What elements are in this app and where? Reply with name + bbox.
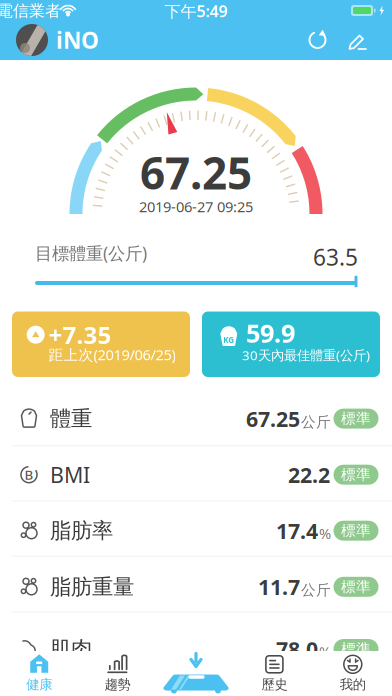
staticText: 健康 [26,676,52,693]
staticText: 11.7 [258,573,300,601]
staticText: 體重 [50,405,92,432]
staticText: 標準 [341,578,371,596]
staticText: 歷史 [261,676,287,693]
staticText: 67.25 [140,143,252,202]
staticText: KG [223,335,234,345]
button[interactable]: 肌肉 [0,0,392,56]
staticText: 22.2 [288,460,330,489]
staticText: 我的 [340,676,366,693]
button[interactable]: Measure [157,651,235,696]
staticText: 30天內最佳體重(公斤) [242,346,370,364]
button[interactable]: 健康 [0,651,78,696]
button[interactable]: B [0,0,392,56]
staticText: 78.0 [276,635,318,663]
button[interactable]: Sync [300,23,334,57]
button[interactable]: 脂肪重量 [0,0,392,56]
staticText: 2019-06-27 09:25 [139,197,253,216]
button[interactable]: Profile [16,24,48,56]
button[interactable]: 我的 [314,651,392,696]
staticText: 下午5:49 [164,0,227,22]
staticText: 脂肪重量 [50,574,134,600]
staticText: 目標體重(公斤) [35,241,147,264]
staticText: 公斤 [301,581,331,599]
button[interactable]: 體重 [0,0,392,56]
staticText: 標準 [341,522,371,540]
staticText: 肌肉 [50,636,92,662]
staticText: 公斤 [301,413,331,431]
staticText: 67.25 [246,404,300,433]
button[interactable]: 歷史 [235,651,314,696]
staticText: 距上次(2019/06/25) [48,345,175,364]
staticText: 63.5 [313,242,358,272]
button[interactable]: 脂肪率 [0,0,392,56]
staticText: % [319,523,331,543]
staticText: 標準 [341,640,371,658]
staticText: 59.9 [246,316,295,350]
button[interactable]: Edit [340,23,374,57]
staticText: 趨勢 [105,676,131,693]
staticText: BMI [50,460,90,489]
staticText: 電信業者 [0,1,61,21]
staticText: 17.4 [276,516,318,545]
staticText: 標準 [341,466,371,484]
staticText: +7.35 [48,319,111,351]
staticText: iNO [56,25,99,55]
staticText: % [319,642,331,661]
staticText: B [24,466,33,483]
button[interactable]: 趨勢 [78,651,157,696]
staticText: 脂肪率 [50,518,113,544]
staticText: 標準 [341,410,371,428]
